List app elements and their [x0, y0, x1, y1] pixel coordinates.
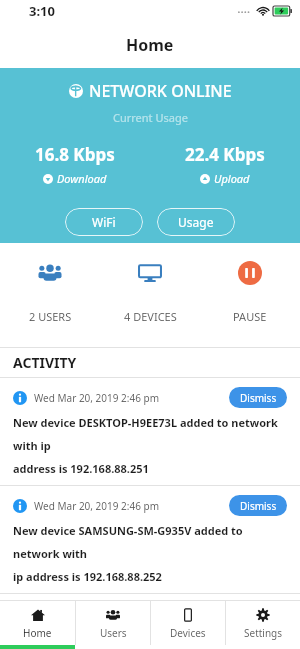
staticText: Wed Mar 20, 2019 2:46 pm — [34, 391, 229, 405]
staticText: Devices — [170, 626, 206, 640]
button[interactable]: PAUSE — [200, 243, 300, 343]
button[interactable]: 2 USERS — [0, 243, 100, 343]
button[interactable]: Home — [0, 601, 75, 645]
staticText: Usage — [178, 214, 214, 230]
button[interactable]: Dismiss — [229, 387, 287, 408]
staticText: Current Usage — [113, 110, 188, 125]
button[interactable]: WiFi — [65, 208, 143, 236]
staticText: PAUSE — [233, 309, 267, 324]
staticText: Settings — [244, 626, 283, 640]
staticText: 3:10 — [29, 2, 55, 20]
staticText: Upload — [214, 171, 250, 186]
staticText: New device SAMSUNG-SM-G935V added to net… — [13, 523, 287, 584]
staticText: Users — [100, 626, 127, 640]
staticText: 4 DEVICES — [124, 309, 177, 324]
button[interactable]: Dismiss — [229, 495, 287, 516]
staticText: WiFi — [92, 214, 116, 230]
staticText: New device DESKTOP-H9EE73L added to netw… — [13, 415, 287, 476]
button[interactable]: Wed Mar 20, 2019 2:46 pm — [0, 378, 300, 485]
button[interactable]: Usage — [157, 208, 235, 236]
button[interactable]: Devices — [151, 601, 225, 645]
staticText: ACTIVITY — [13, 353, 77, 372]
button[interactable]: Users — [76, 601, 150, 645]
staticText: Home — [23, 626, 52, 640]
staticText: 16.8 Kbps — [35, 143, 115, 166]
staticText: NETWORK ONLINE — [89, 80, 232, 102]
staticText: Dismiss — [240, 391, 277, 405]
staticText: Dismiss — [240, 499, 277, 513]
staticText: 22.4 Kbps — [185, 143, 265, 166]
button[interactable]: Settings — [226, 601, 300, 645]
staticText: Download — [57, 171, 107, 186]
button[interactable]: Wed Mar 20, 2019 2:46 pm — [0, 486, 300, 593]
staticText: Home — [126, 34, 174, 56]
staticText: 2 USERS — [29, 309, 72, 324]
button[interactable]: 4 DEVICES — [100, 243, 200, 343]
staticText: Wed Mar 20, 2019 2:46 pm — [34, 499, 229, 513]
